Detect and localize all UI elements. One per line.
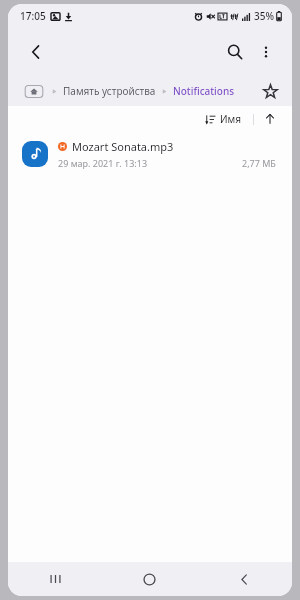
button[interactable]: Sort ascending <box>258 107 282 131</box>
button[interactable]: Add to favorites <box>256 77 284 105</box>
staticText: 35% <box>254 9 274 23</box>
staticText: 17:05 <box>20 9 46 23</box>
button[interactable]: More options <box>252 38 280 66</box>
staticText: Имя <box>220 112 242 126</box>
button[interactable]: Home folder <box>24 84 44 99</box>
button[interactable]: Имя <box>201 110 246 128</box>
button[interactable]: Recent apps <box>8 562 102 596</box>
button[interactable]: Back <box>18 34 54 70</box>
button[interactable]: Notifications <box>173 84 235 98</box>
staticText: Память устройства <box>63 84 156 98</box>
staticText: Mozart Sonata.mp3 <box>72 139 174 154</box>
staticText: Notifications <box>173 84 235 98</box>
button[interactable]: Search <box>218 35 252 69</box>
staticText: 29 мар. 2021 г. 13:13 <box>58 157 148 169</box>
button[interactable]: Mozart Sonata.mp3 <box>8 132 292 176</box>
button[interactable]: Back <box>197 562 292 596</box>
button[interactable]: Память устройства <box>63 84 156 98</box>
button[interactable]: Home <box>102 562 197 596</box>
staticText: 2,77 МБ <box>242 157 276 169</box>
